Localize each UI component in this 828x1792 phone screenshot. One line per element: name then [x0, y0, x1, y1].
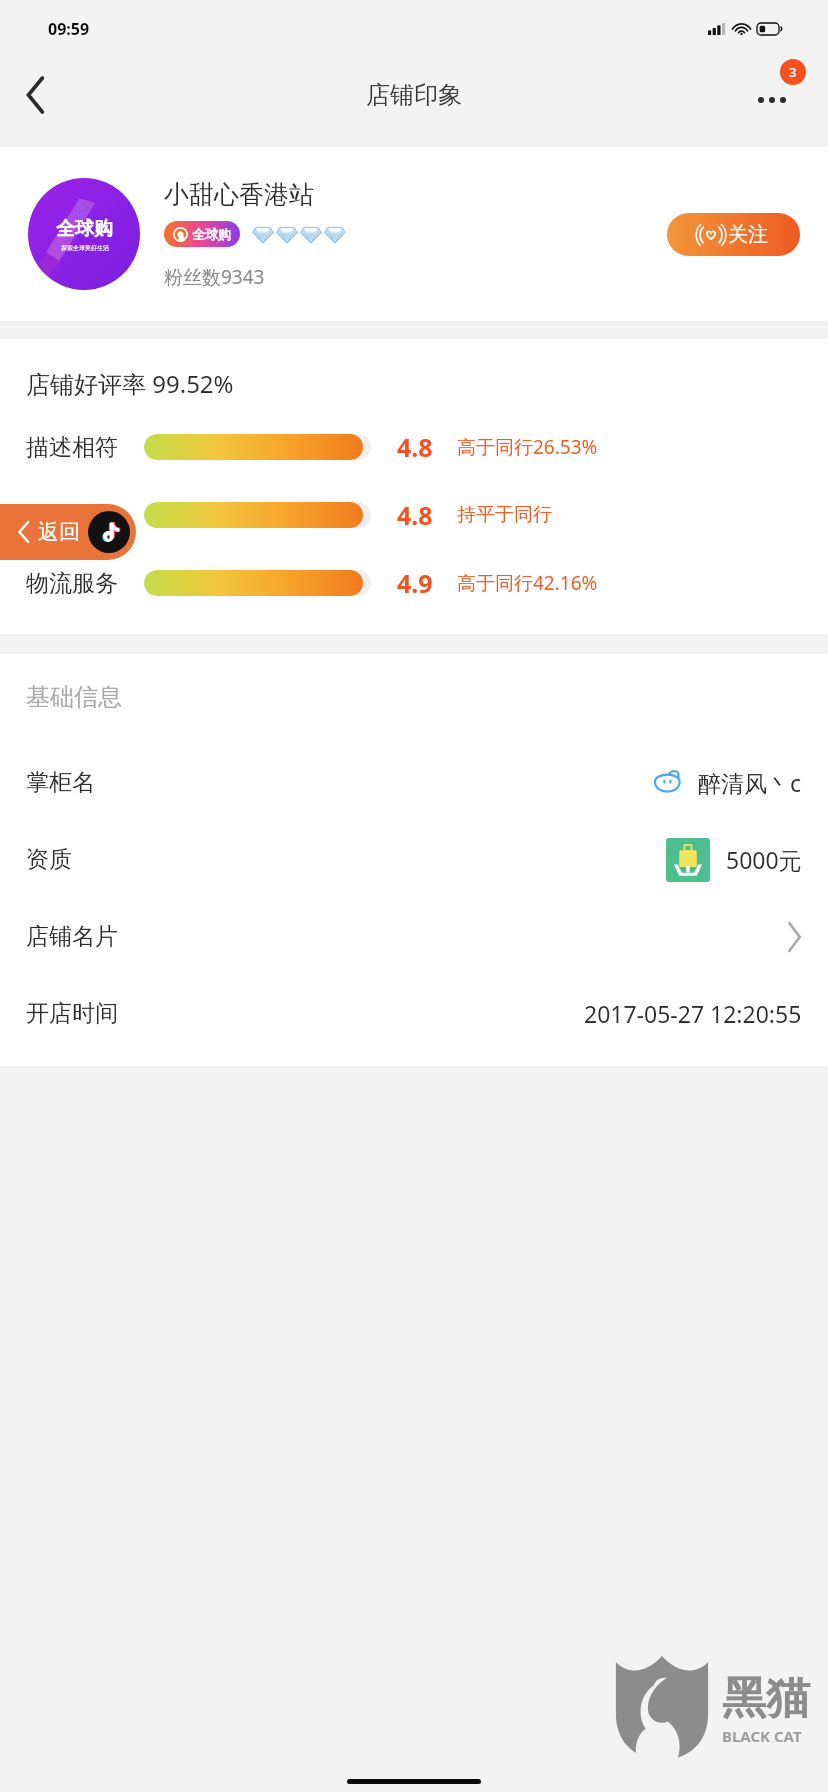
staticText: 持平于同行: [457, 503, 552, 527]
button[interactable]: 返回: [0, 504, 136, 560]
staticText: 高于同行26.53%: [457, 434, 598, 460]
staticText: 全球购: [192, 226, 231, 242]
staticText: 探索全球美好生活: [61, 244, 109, 252]
staticText: 服务态度: [26, 501, 118, 530]
staticText: 5000元: [726, 844, 802, 875]
staticText: 描述相符: [26, 433, 118, 462]
staticText: 粉丝数9343: [164, 264, 265, 290]
button[interactable]: 资质: [0, 821, 828, 898]
staticText: 店铺好评率 99.52%: [26, 367, 234, 400]
staticText: 基础信息: [26, 682, 122, 712]
staticText: 物流服务: [26, 569, 118, 598]
staticText: 2017-05-27 12:20:55: [584, 998, 802, 1029]
staticText: 店铺印象: [366, 80, 462, 110]
button[interactable]: 店铺名片: [0, 898, 828, 975]
staticText: 醉清风丶c: [698, 767, 802, 798]
staticText: 店铺名片: [26, 922, 118, 951]
staticText: 3: [789, 63, 797, 81]
button[interactable]: Back: [0, 59, 72, 131]
staticText: 全球购: [56, 217, 113, 241]
staticText: 4.9: [397, 566, 433, 600]
staticText: 小甜心香港站: [164, 179, 314, 210]
staticText: 高于同行42.16%: [457, 570, 598, 596]
button[interactable]: 关注: [667, 213, 800, 256]
button[interactable]: 掌柜名: [0, 744, 828, 821]
staticText: 4.8: [397, 498, 433, 532]
staticText: 关注: [728, 222, 768, 247]
staticText: 资质: [26, 845, 72, 874]
staticText: 黑猫: [722, 1671, 810, 1726]
button[interactable]: More options: [740, 63, 804, 127]
staticText: 09:59: [48, 18, 90, 40]
staticText: 掌柜名: [26, 768, 95, 797]
button[interactable]: 开店时间: [0, 975, 828, 1052]
staticText: 开店时间: [26, 999, 118, 1028]
staticText: BLACK CAT: [722, 1726, 802, 1746]
staticText: 4.8: [397, 430, 433, 464]
staticText: 返回: [38, 519, 80, 545]
